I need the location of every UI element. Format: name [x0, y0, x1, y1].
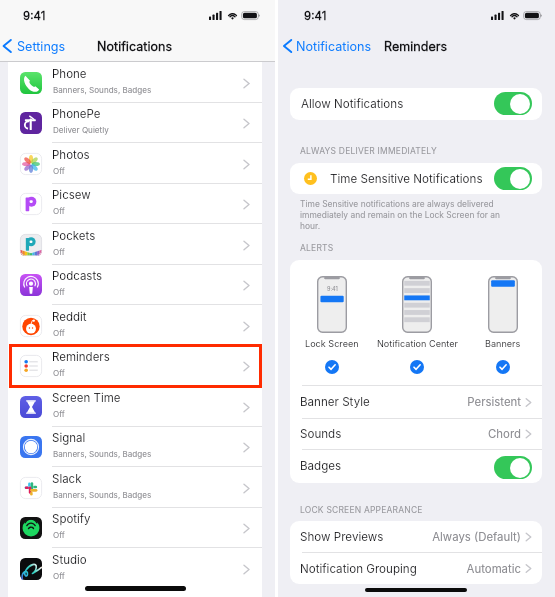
button[interactable]: Toggle: [494, 456, 532, 479]
staticText: Off: [53, 571, 65, 581]
button[interactable]: Banners: [461, 260, 542, 385]
staticText: Phone: [52, 67, 87, 81]
staticText: Banners, Sounds, Badges: [53, 85, 152, 95]
staticText: Badges: [300, 459, 342, 473]
staticText: Notification Center: [377, 338, 458, 349]
staticText: Lock Screen: [305, 338, 359, 349]
staticText: Banners, Sounds, Badges: [53, 449, 152, 459]
button[interactable]: Time Sensitive Notifications: [290, 163, 542, 194]
button[interactable]: Slack: [8, 467, 262, 508]
staticText: Slack: [52, 472, 82, 486]
staticText: Settings: [17, 39, 66, 54]
staticText: Banner Style: [300, 395, 370, 409]
staticText: Photos: [52, 148, 90, 162]
staticText: Pockets: [52, 229, 96, 243]
staticText: Time Sensitive notifications are always …: [300, 199, 506, 231]
staticText: Notification Grouping: [300, 562, 417, 576]
button[interactable]: 9:41: [290, 260, 374, 385]
staticText: Off: [53, 287, 65, 297]
staticText: Notifications: [296, 39, 372, 54]
button[interactable]: Badges: [290, 451, 542, 483]
staticText: Reminders: [52, 350, 110, 364]
staticText: Off: [53, 328, 65, 338]
staticText: Off: [53, 247, 65, 257]
staticText: ALWAYS DELIVER IMMEDIATELY: [300, 146, 437, 156]
staticText: Off: [53, 368, 65, 378]
staticText: Picsew: [52, 188, 91, 202]
staticText: 9:41: [327, 286, 338, 293]
staticText: Off: [53, 206, 65, 216]
button[interactable]: Toggle: [494, 167, 532, 190]
button[interactable]: Phone: [8, 62, 262, 103]
staticText: Banners: [485, 338, 521, 349]
button[interactable]: Picsew: [8, 183, 262, 224]
staticText: Studio: [52, 553, 87, 567]
button[interactable]: Notifications: [278, 36, 372, 56]
button[interactable]: Signal: [8, 426, 262, 467]
staticText: Off: [53, 530, 65, 540]
button[interactable]: Banner Style: [290, 386, 542, 419]
button[interactable]: Allow Notifications: [290, 88, 542, 120]
button[interactable]: Reddit: [8, 305, 262, 346]
staticText: Persistent: [290, 395, 521, 409]
staticText: Automatic: [290, 562, 521, 576]
button[interactable]: Notification Center: [375, 260, 459, 385]
staticText: Show Previews: [300, 530, 384, 544]
staticText: 9:41: [304, 9, 327, 23]
staticText: Podcasts: [52, 269, 103, 283]
staticText: Off: [53, 166, 65, 176]
button[interactable]: Pockets: [8, 224, 262, 265]
button[interactable]: Screen Time: [8, 386, 262, 427]
staticText: Deliver Quietly: [53, 125, 109, 135]
staticText: 9:41: [23, 9, 46, 23]
button[interactable]: Reminders: [8, 345, 262, 386]
button[interactable]: Settings: [0, 36, 68, 56]
staticText: LOCK SCREEN APPEARANCE: [300, 505, 423, 515]
staticText: Chord: [290, 427, 521, 441]
button[interactable]: Sounds: [290, 418, 542, 450]
staticText: Notifications: [97, 39, 173, 54]
button[interactable]: Show Previews: [290, 521, 542, 553]
staticText: PhonePe: [52, 107, 101, 121]
staticText: Screen Time: [52, 391, 121, 405]
button[interactable]: Toggle: [494, 92, 532, 115]
staticText: Off: [53, 409, 65, 419]
button[interactable]: Studio: [8, 548, 262, 589]
staticText: Reminders: [384, 39, 448, 54]
button[interactable]: PhonePe: [8, 102, 262, 143]
staticText: ALERTS: [300, 243, 334, 253]
staticText: Allow Notifications: [301, 97, 404, 111]
button[interactable]: Spotify: [8, 507, 262, 548]
staticText: Sounds: [300, 427, 342, 441]
staticText: Reddit: [52, 310, 87, 324]
button[interactable]: Photos: [8, 143, 262, 184]
staticText: Spotify: [52, 512, 91, 526]
staticText: Always (Default): [290, 530, 521, 544]
staticText: Signal: [52, 431, 86, 445]
button[interactable]: Notification Grouping: [290, 553, 542, 584]
staticText: Time Sensitive Notifications: [330, 172, 483, 186]
button[interactable]: Podcasts: [8, 264, 262, 305]
staticText: Banners, Sounds, Badges: [53, 490, 152, 500]
